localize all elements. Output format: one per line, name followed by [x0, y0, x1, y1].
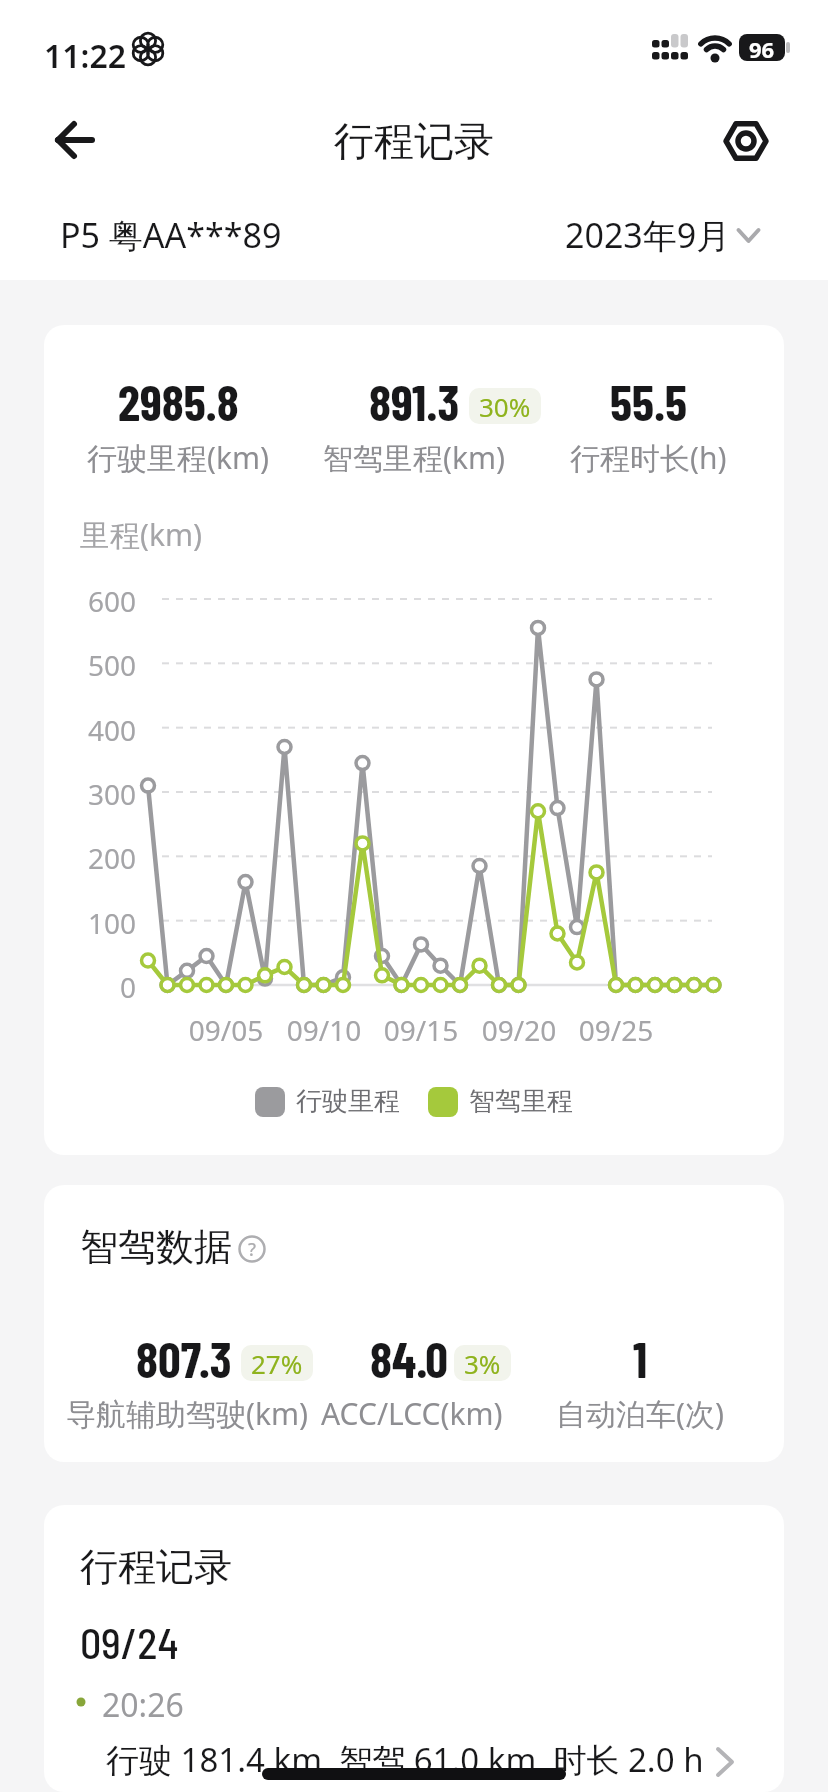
- button[interactable]: [712, 107, 780, 175]
- staticText: 27%: [251, 1346, 303, 1381]
- staticText: 891.3: [369, 371, 460, 431]
- staticText: 1: [633, 1328, 648, 1388]
- staticText: 智驾里程: [469, 1085, 573, 1118]
- button[interactable]: 2023年9月: [565, 212, 760, 258]
- staticText: 09/20: [474, 1011, 564, 1049]
- staticText: 2985.8: [118, 371, 239, 431]
- staticText: 11:22: [44, 34, 127, 78]
- button[interactable]: ?: [238, 1235, 266, 1263]
- staticText: 300: [60, 775, 136, 813]
- staticText: 行程时长(h): [570, 437, 727, 478]
- button[interactable]: [40, 105, 110, 175]
- staticText: 0: [60, 968, 136, 1006]
- staticText: 600: [60, 582, 136, 620]
- staticText: 09/15: [376, 1011, 466, 1049]
- button[interactable]: 行驶 181.4 km 智驾 61.0 km 时长 2.0 h: [44, 1730, 784, 1790]
- staticText: 行驶 181.4 km 智驾 61.0 km 时长 2.0 h: [106, 1737, 704, 1782]
- staticText: 09/10: [279, 1011, 369, 1049]
- staticText: 09/05: [181, 1011, 271, 1049]
- staticText: 55.5: [610, 371, 687, 431]
- staticText: 100: [60, 904, 136, 942]
- staticText: 3%: [464, 1346, 501, 1381]
- staticText: 09/25: [571, 1011, 661, 1049]
- staticText: 84.0: [370, 1328, 448, 1388]
- staticText: 里程(km): [80, 514, 203, 555]
- staticText: 09/24: [80, 1617, 179, 1667]
- staticText: ACC/LCC(km): [321, 1393, 503, 1434]
- staticText: 导航辅助驾驶(km): [66, 1393, 309, 1434]
- staticText: 20:26: [102, 1683, 184, 1727]
- staticText: 智驾数据: [80, 1223, 232, 1271]
- staticText: 2023年9月: [565, 212, 731, 258]
- staticText: ?: [248, 1237, 257, 1262]
- staticText: 96: [749, 34, 775, 61]
- staticText: P5 粤AA***89: [60, 212, 282, 258]
- staticText: 行程记录: [334, 116, 494, 166]
- staticText: 807.3: [136, 1328, 232, 1388]
- staticText: 自动泊车(次): [556, 1393, 724, 1434]
- staticText: 200: [60, 839, 136, 877]
- staticText: 30%: [479, 389, 531, 424]
- staticText: 智驾里程(km): [323, 437, 506, 478]
- staticText: 500: [60, 646, 136, 684]
- staticText: 400: [60, 711, 136, 749]
- staticText: 行驶里程: [296, 1085, 400, 1118]
- staticText: 行驶里程(km): [87, 437, 270, 478]
- staticText: 行程记录: [80, 1543, 232, 1591]
